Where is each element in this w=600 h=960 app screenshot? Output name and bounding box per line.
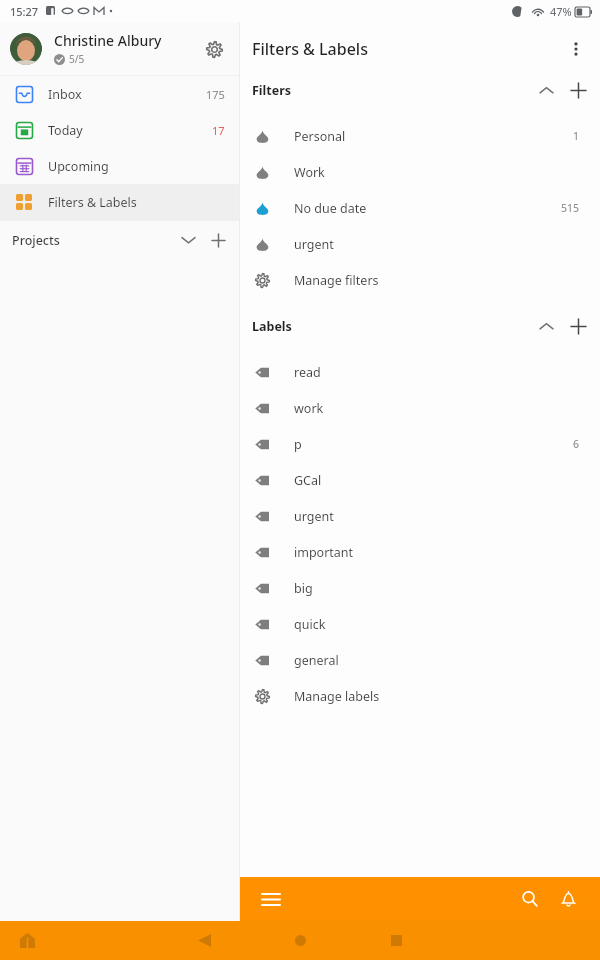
staticText: 175: [206, 87, 225, 102]
button[interactable]: Settings: [197, 32, 231, 66]
button[interactable]: urgent: [240, 498, 600, 534]
button[interactable]: Filters & Labels: [0, 184, 239, 220]
staticText: Inbox: [48, 86, 206, 103]
button[interactable]: work: [240, 390, 600, 426]
button[interactable]: general: [240, 642, 600, 678]
staticText: urgent: [294, 508, 580, 525]
button[interactable]: Collapse label section: [530, 311, 562, 341]
button[interactable]: Notifications: [550, 881, 586, 917]
button[interactable]: quick: [240, 606, 600, 642]
button[interactable]: Today: [0, 112, 239, 148]
staticText: 17: [212, 123, 225, 138]
staticText: No due date: [294, 200, 561, 217]
button[interactable]: No due date: [240, 190, 600, 226]
staticText: urgent: [294, 236, 580, 253]
button[interactable]: Upcoming: [0, 148, 239, 184]
staticText: 15:27: [10, 4, 39, 19]
staticText: 5/5: [69, 52, 85, 66]
button[interactable]: Collapse filter section: [530, 75, 562, 105]
button[interactable]: p: [240, 426, 600, 462]
staticText: big: [294, 580, 580, 597]
button[interactable]: More options: [556, 29, 596, 69]
staticText: quick: [294, 616, 580, 633]
staticText: general: [294, 652, 580, 669]
staticText: work: [294, 400, 580, 417]
button[interactable]: important: [240, 534, 600, 570]
staticText: Filters: [252, 82, 530, 99]
staticText: Christine Albury: [54, 31, 162, 50]
staticText: 1: [573, 129, 580, 143]
staticText: Manage filters: [294, 272, 580, 289]
button[interactable]: Inbox: [0, 76, 239, 112]
staticText: Manage labels: [294, 688, 580, 705]
staticText: read: [294, 364, 580, 381]
staticText: Projects: [12, 232, 173, 249]
button[interactable]: Manage labels: [240, 678, 600, 714]
staticText: Upcoming: [48, 158, 225, 175]
staticText: 515: [561, 201, 580, 215]
button[interactable]: Personal: [240, 118, 600, 154]
button[interactable]: Christine Albury: [0, 22, 239, 75]
staticText: Today: [48, 122, 212, 139]
button[interactable]: Projects: [0, 221, 239, 259]
button[interactable]: Menu: [254, 882, 288, 916]
staticText: Work: [294, 164, 580, 181]
button[interactable]: read: [240, 354, 600, 390]
button[interactable]: Manage filters: [240, 262, 600, 298]
staticText: 47%: [550, 4, 572, 19]
staticText: 6: [573, 437, 580, 451]
staticText: Filters & Labels: [252, 38, 556, 60]
button[interactable]: Search: [512, 881, 548, 917]
staticText: Filters & Labels: [48, 194, 225, 211]
button[interactable]: Add filter: [562, 75, 594, 105]
staticText: GCal: [294, 472, 580, 489]
staticText: Personal: [294, 128, 573, 145]
button[interactable]: GCal: [240, 462, 600, 498]
button[interactable]: big: [240, 570, 600, 606]
button[interactable]: Add project: [203, 225, 233, 255]
staticText: p: [294, 436, 573, 453]
staticText: important: [294, 544, 580, 561]
button[interactable]: Work: [240, 154, 600, 190]
staticText: Labels: [252, 318, 530, 335]
button[interactable]: Add label: [562, 311, 594, 341]
button[interactable]: urgent: [240, 226, 600, 262]
button[interactable]: Collapse projects: [173, 225, 203, 255]
